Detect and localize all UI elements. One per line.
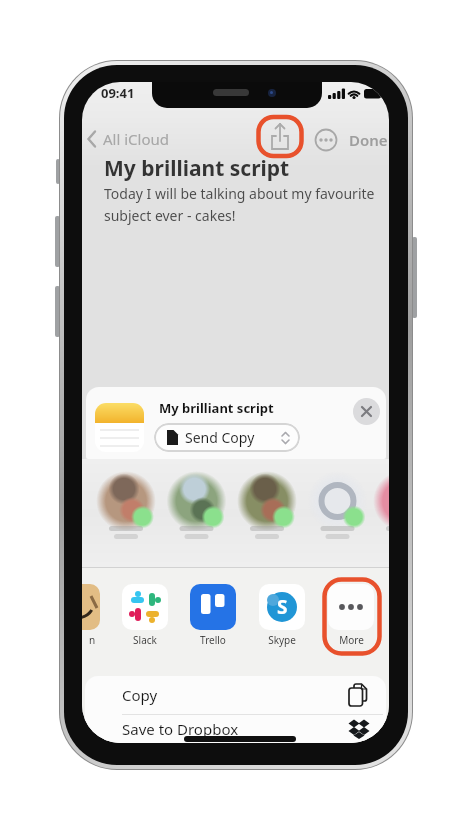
button[interactable] — [103, 478, 149, 524]
button[interactable]: S — [259, 584, 305, 630]
staticText: n — [89, 633, 96, 647]
staticText: My brilliant script — [159, 399, 274, 417]
button[interactable] — [82, 584, 100, 630]
staticText: My brilliant script — [104, 154, 290, 183]
staticText: Skype — [268, 633, 296, 647]
button[interactable] — [173, 478, 219, 524]
button[interactable]: All iCloud — [86, 127, 170, 151]
button[interactable]: Send Copy — [154, 423, 300, 452]
button[interactable] — [122, 584, 168, 630]
button[interactable] — [257, 116, 303, 158]
staticText: More — [339, 633, 364, 647]
staticText: 09:41 — [101, 84, 135, 102]
button[interactable]: Save to Dropbox — [85, 715, 386, 743]
button[interactable]: Copy — [85, 676, 386, 714]
staticText: Slack — [133, 633, 157, 647]
staticText: All iCloud — [103, 129, 170, 149]
button[interactable] — [380, 478, 389, 524]
button[interactable] — [353, 398, 380, 425]
button[interactable] — [190, 584, 236, 630]
staticText: Save to Dropbox — [122, 719, 239, 739]
button[interactable] — [314, 478, 360, 524]
staticText: S — [277, 594, 288, 620]
staticText: Send Copy — [185, 428, 255, 447]
button[interactable] — [328, 584, 374, 630]
button[interactable] — [244, 478, 290, 524]
staticText: Today I will be talking about my favouri… — [104, 184, 375, 225]
staticText: Copy — [122, 685, 158, 705]
staticText: Trello — [200, 633, 226, 647]
button[interactable]: Done — [349, 130, 388, 150]
button[interactable] — [315, 129, 339, 153]
